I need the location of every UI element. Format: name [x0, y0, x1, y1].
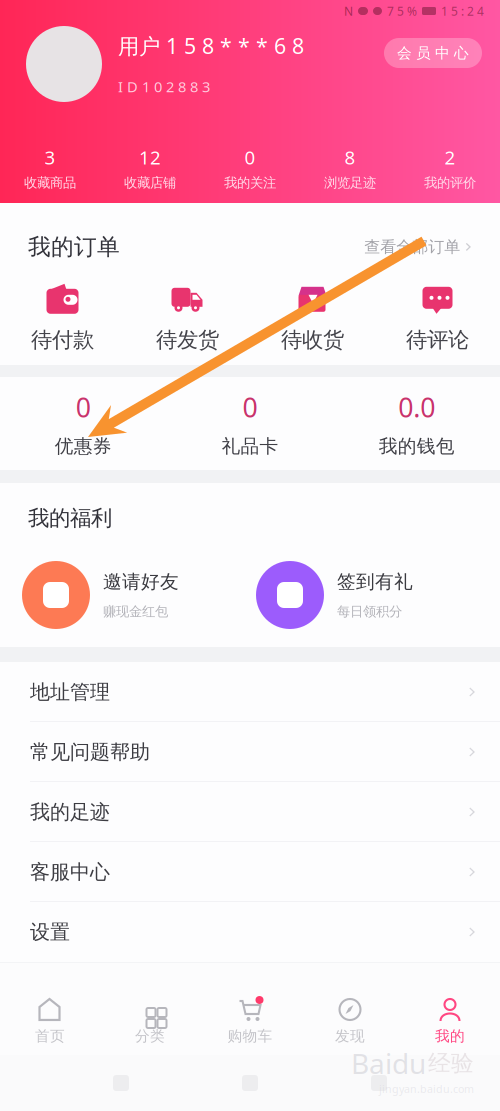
- button[interactable]: 会 员 中 心: [384, 38, 482, 90]
- staticText: 0: [244, 145, 255, 170]
- staticText: 优惠券: [55, 435, 112, 458]
- staticText: 收藏店铺: [124, 175, 176, 191]
- button[interactable]: 客服中心: [0, 842, 500, 902]
- button[interactable]: 8: [300, 145, 400, 191]
- staticText: 0: [76, 389, 91, 425]
- staticText: 赚现金红包: [103, 603, 168, 620]
- staticText: 3: [44, 145, 55, 170]
- button[interactable]: 购物车: [200, 973, 300, 1045]
- staticText: 1 5 : 2 4: [441, 3, 484, 19]
- button[interactable]: 查看全部订单: [364, 233, 472, 261]
- staticText: 发现: [335, 1027, 365, 1045]
- staticText: 查看全部订单: [364, 237, 460, 257]
- staticText: N: [344, 3, 353, 19]
- staticText: 收藏商品: [24, 175, 76, 191]
- staticText: 12: [139, 145, 161, 170]
- button[interactable]: 发现: [300, 973, 400, 1045]
- button[interactable]: 签到有礼: [256, 561, 490, 629]
- staticText: 会 员 中 心: [397, 44, 469, 62]
- button[interactable]: 0.0: [333, 389, 500, 458]
- staticText: I D 1 0 2 8 8 3: [118, 77, 210, 96]
- staticText: 2: [444, 145, 455, 170]
- staticText: 待评论: [406, 327, 469, 353]
- staticText: 我的福利: [28, 505, 112, 531]
- staticText: 经验: [428, 1049, 474, 1077]
- staticText: 设置: [30, 920, 70, 944]
- button[interactable]: 2: [400, 145, 500, 191]
- button[interactable]: 0: [167, 389, 333, 458]
- staticText: 分类: [135, 1027, 165, 1045]
- staticText: 待收货: [281, 327, 344, 353]
- button[interactable]: 我的足迹: [0, 782, 500, 842]
- button[interactable]: 12: [100, 145, 200, 191]
- staticText: 我的订单: [28, 233, 120, 261]
- staticText: Baidu: [351, 1045, 426, 1082]
- staticText: 我的钱包: [379, 435, 455, 458]
- staticText: 浏览足迹: [324, 175, 376, 191]
- staticText: 每日领积分: [337, 603, 402, 620]
- button[interactable]: 我的: [400, 973, 500, 1045]
- staticText: 礼品卡: [221, 435, 278, 458]
- staticText: 购物车: [227, 1027, 272, 1045]
- button[interactable]: 首页: [0, 973, 100, 1045]
- button[interactable]: 待收货: [250, 283, 375, 353]
- button[interactable]: 待付款: [0, 283, 125, 353]
- staticText: 我的评价: [424, 175, 476, 191]
- staticText: 客服中心: [30, 860, 110, 884]
- staticText: 地址管理: [30, 680, 110, 704]
- staticText: 我的关注: [224, 175, 276, 191]
- button[interactable]: 地址管理: [0, 662, 500, 722]
- staticText: 我的: [435, 1027, 465, 1045]
- button[interactable]: 0: [200, 145, 300, 191]
- staticText: 我的足迹: [30, 800, 110, 824]
- staticText: 待付款: [31, 327, 94, 353]
- staticText: 首页: [35, 1027, 65, 1045]
- button[interactable]: 邀请好友: [22, 561, 256, 629]
- staticText: 常见问题帮助: [30, 740, 150, 764]
- staticText: 签到有礼: [337, 570, 413, 593]
- button[interactable]: 0: [0, 389, 167, 458]
- staticText: 待发货: [156, 327, 219, 353]
- staticText: 8: [344, 145, 355, 170]
- staticText: 0.0: [398, 389, 435, 425]
- button[interactable]: 待评论: [375, 283, 500, 353]
- button[interactable]: 设置: [0, 902, 500, 962]
- button[interactable]: 分类: [100, 973, 200, 1045]
- button[interactable]: 3: [0, 145, 100, 191]
- staticText: jingyan.baidu.com: [379, 1082, 474, 1096]
- staticText: 邀请好友: [103, 570, 179, 593]
- button[interactable]: 待发货: [125, 283, 250, 353]
- button[interactable]: 常见问题帮助: [0, 722, 500, 782]
- staticText: 7 5 %: [387, 3, 417, 19]
- staticText: 0: [242, 389, 257, 425]
- staticText: 用户 1 5 8 * * * 6 8: [118, 32, 304, 60]
